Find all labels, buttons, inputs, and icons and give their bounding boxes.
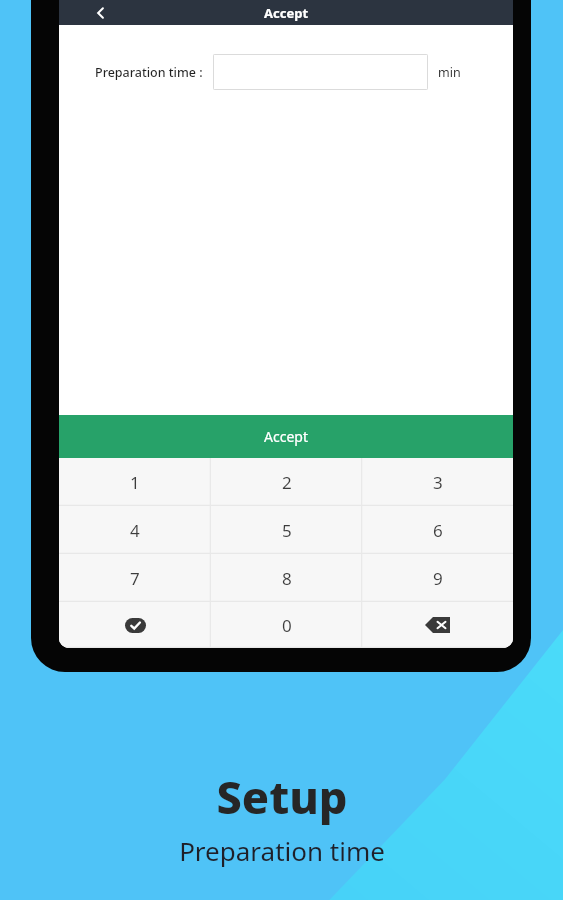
button[interactable] [213,54,428,90]
button[interactable]: Confirm [59,602,211,648]
staticText: 5 [282,519,292,542]
button[interactable]: 2 [211,458,362,506]
staticText: Setup [216,766,348,827]
staticText: Preparation time [179,833,385,868]
staticText: 8 [282,567,292,590]
staticText: 4 [130,519,140,542]
button[interactable]: Backspace [362,602,513,648]
staticText: 7 [130,567,140,590]
button[interactable]: 9 [362,554,513,602]
staticText: 1 [130,471,140,494]
button[interactable]: 0 [211,602,362,648]
button[interactable]: 7 [59,554,211,602]
staticText: 3 [433,471,443,494]
button[interactable]: Accept [59,415,513,458]
button[interactable]: 6 [362,506,513,554]
button[interactable]: 4 [59,506,211,554]
button[interactable]: 5 [211,506,362,554]
staticText: min [438,64,461,81]
button[interactable]: 8 [211,554,362,602]
staticText: Preparation time : [95,64,203,81]
staticText: 9 [433,567,443,590]
staticText: 2 [282,471,292,494]
staticText: Accept [264,4,309,22]
staticText: 0 [282,614,292,637]
staticText: Accept [264,427,308,446]
staticText: 6 [433,519,443,542]
button[interactable]: 1 [59,458,211,506]
button[interactable]: 3 [362,458,513,506]
button[interactable]: Back [79,0,123,25]
